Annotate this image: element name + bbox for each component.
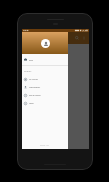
staticText: Help & Support bbox=[29, 94, 41, 96]
button[interactable]: My Courses bbox=[22, 75, 68, 83]
staticText: Work bbox=[29, 59, 34, 61]
button[interactable]: Help & Support bbox=[22, 91, 68, 99]
button[interactable]: More options bbox=[82, 36, 86, 40]
staticText: My library bbox=[24, 70, 32, 72]
staticText: Login/Register bbox=[29, 86, 41, 88]
staticText: About bbox=[29, 102, 34, 104]
staticText: Version 1.0.3 bbox=[40, 144, 50, 146]
button[interactable]: Open navigation drawer bbox=[25, 36, 29, 40]
button[interactable]: About bbox=[22, 99, 68, 107]
button[interactable]: Profile header bbox=[22, 29, 68, 54]
staticText: MyApp bbox=[32, 36, 41, 40]
staticText: My Courses bbox=[29, 78, 38, 80]
button[interactable]: Work bbox=[22, 54, 68, 65]
button[interactable]: Close navigation drawer bbox=[22, 29, 89, 149]
button[interactable]: Login/Register bbox=[22, 83, 68, 91]
button[interactable]: Search bbox=[75, 36, 79, 40]
